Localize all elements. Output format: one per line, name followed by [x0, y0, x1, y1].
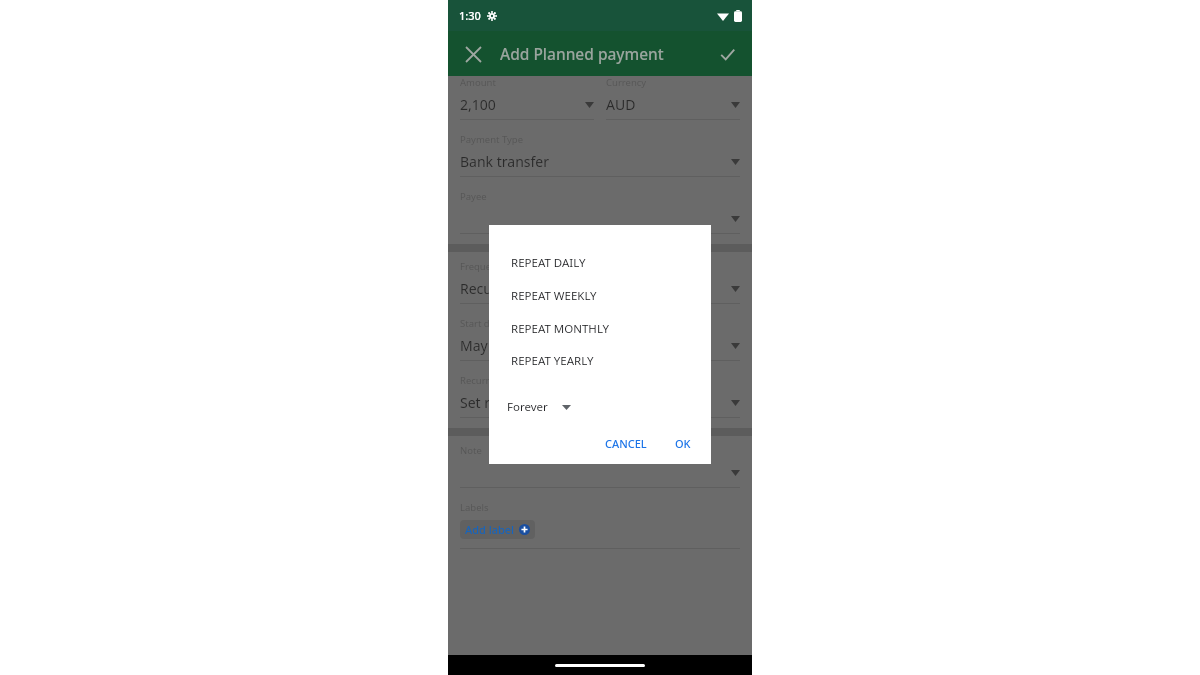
staticText: Bank transfer [460, 152, 549, 171]
button[interactable]: Forever [507, 390, 711, 424]
staticText: Start date [460, 317, 504, 330]
staticText: Forever [507, 399, 548, 415]
staticText: May 1, 2021 [460, 336, 539, 355]
staticText: Note [460, 444, 482, 457]
button[interactable]: OK [667, 431, 699, 456]
button[interactable]: Payee [460, 190, 740, 234]
button[interactable]: Close [456, 37, 490, 71]
staticText: Payment Type [460, 133, 524, 146]
staticText: Add Planned payment [500, 43, 664, 64]
staticText: AUD [606, 95, 636, 114]
staticText: Currency [606, 76, 647, 89]
button[interactable]: Currency [606, 76, 740, 120]
staticText: Recurring [460, 279, 525, 298]
button[interactable]: Payment Type [460, 133, 740, 177]
staticText: OK [675, 436, 691, 451]
button[interactable]: Note [460, 444, 740, 488]
button[interactable]: REPEAT WEEKLY [497, 279, 698, 312]
staticText: Add label [465, 522, 515, 537]
button[interactable]: REPEAT MONTHLY [497, 312, 698, 345]
button[interactable]: Add label [460, 520, 535, 539]
staticText: REPEAT WEEKLY [511, 288, 597, 304]
staticText: Set recurrence [460, 393, 556, 412]
staticText: REPEAT DAILY [511, 255, 586, 271]
staticText: CANCEL [605, 436, 647, 451]
button[interactable]: Amount [460, 76, 594, 120]
staticText: REPEAT YEARLY [511, 353, 594, 369]
staticText: 1:30 [459, 8, 481, 23]
button[interactable]: REPEAT DAILY [497, 246, 698, 279]
button[interactable]: CANCEL [597, 431, 655, 456]
staticText: Labels [460, 501, 489, 514]
staticText: Recurrence [460, 374, 511, 387]
staticText: REPEAT MONTHLY [511, 321, 610, 337]
button[interactable]: REPEAT YEARLY [497, 345, 698, 377]
button[interactable]: Start date [460, 317, 740, 361]
staticText: Frequency [460, 260, 507, 273]
button[interactable]: Save [710, 37, 744, 71]
staticText: Amount [460, 76, 496, 89]
button[interactable]: Frequency [460, 260, 740, 304]
staticText: 2,100 [460, 95, 496, 114]
staticText: Payee [460, 190, 487, 203]
button[interactable]: Recurrence [460, 374, 740, 418]
